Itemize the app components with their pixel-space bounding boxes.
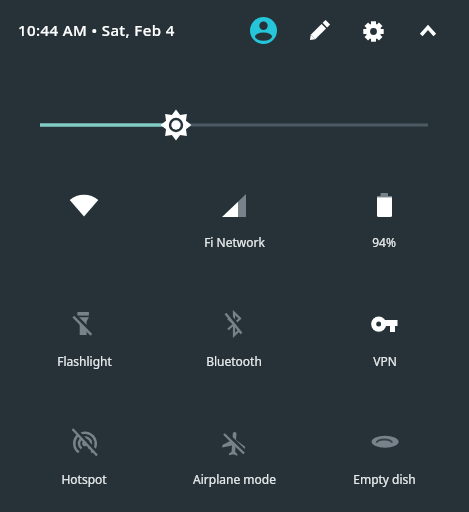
button[interactable]: VPN <box>310 290 460 374</box>
staticText: Fi Network <box>204 234 265 250</box>
button[interactable] <box>363 21 384 42</box>
button[interactable] <box>309 21 329 41</box>
button[interactable]: Hotspot <box>9 408 159 492</box>
button[interactable]: Airplane mode <box>159 408 309 492</box>
staticText: 10:44 AM • Sat, Feb 4 <box>18 20 175 40</box>
staticText: Empty dish <box>353 471 416 487</box>
staticText: Hotspot <box>61 471 107 487</box>
button[interactable]: Bluetooth <box>159 290 309 374</box>
staticText: VPN <box>373 353 397 369</box>
staticText: Flashlight <box>57 353 112 369</box>
button[interactable]: Empty dish <box>309 408 459 492</box>
staticText: Bluetooth <box>206 353 262 369</box>
button[interactable] <box>420 24 436 36</box>
button[interactable] <box>30 105 440 145</box>
button[interactable]: Flashlight <box>9 290 159 374</box>
button[interactable]: Fi Network <box>159 171 309 255</box>
button[interactable] <box>9 171 159 255</box>
button[interactable] <box>250 17 277 44</box>
staticText: 94% <box>372 234 396 250</box>
staticText: Airplane mode <box>193 471 276 487</box>
button[interactable]: 94% <box>309 171 459 255</box>
